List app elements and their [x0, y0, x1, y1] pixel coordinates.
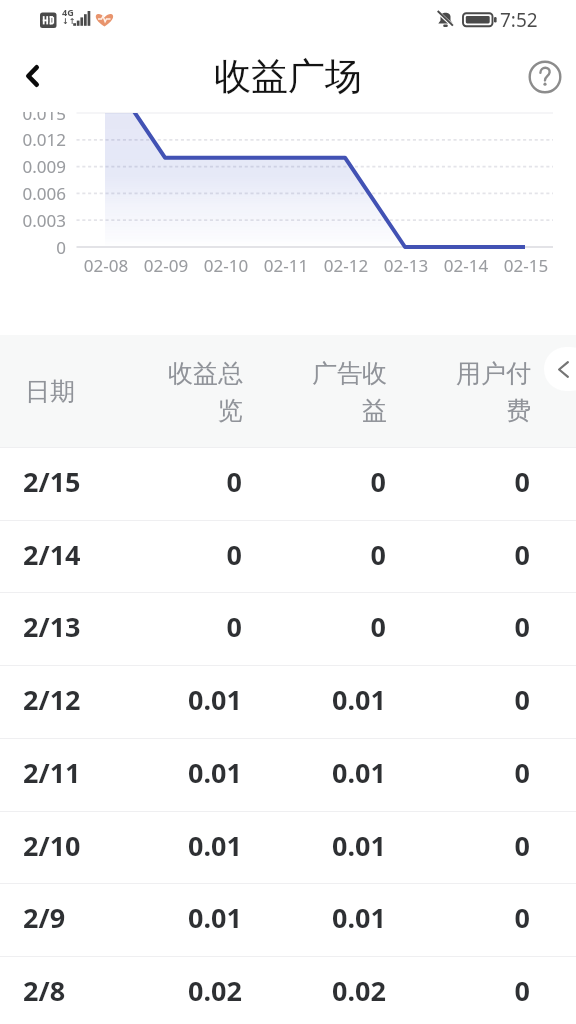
button[interactable]: 2/13: [0, 593, 576, 665]
button[interactable]: 2/9: [0, 884, 576, 956]
staticText: 0.01: [122, 827, 242, 864]
staticText: 0.01: [266, 827, 386, 864]
staticText: 0.01: [122, 899, 242, 936]
staticText: 0.01: [266, 754, 386, 791]
staticText: 02-13: [366, 254, 446, 277]
button[interactable]: Scroll columns: [544, 347, 576, 391]
staticText: 0.01: [266, 899, 386, 936]
button[interactable]: Help: [521, 53, 569, 101]
staticText: 02-09: [126, 254, 206, 277]
staticText: 0: [410, 972, 530, 1009]
staticText: 0: [122, 463, 242, 500]
staticText: 02-12: [306, 254, 386, 277]
staticText: 4G: [62, 6, 74, 18]
button[interactable]: 2/8: [0, 957, 576, 1024]
staticText: 0.01: [122, 681, 242, 718]
staticText: 0: [122, 536, 242, 573]
staticText: 2/12: [23, 681, 81, 718]
staticText: 0: [410, 536, 530, 573]
staticText: 0: [266, 463, 386, 500]
staticText: 用户付费: [453, 358, 531, 426]
staticText: 0.02: [122, 972, 242, 1009]
staticText: 收益广场: [214, 53, 362, 100]
button[interactable]: 2/11: [0, 739, 576, 811]
staticText: 0.006: [0, 182, 66, 205]
staticText: 0.015: [0, 104, 66, 125]
staticText: 0.01: [266, 681, 386, 718]
staticText: 2/8: [23, 972, 66, 1009]
staticText: 0: [410, 608, 530, 645]
staticText: 0: [122, 608, 242, 645]
staticText: 0.009: [0, 155, 66, 178]
staticText: 收益总览: [165, 358, 243, 426]
staticText: 广告收益: [309, 358, 387, 426]
staticText: 0: [266, 536, 386, 573]
button[interactable]: 2/15: [0, 448, 576, 520]
staticText: 2/10: [23, 827, 81, 864]
staticText: 0: [410, 463, 530, 500]
staticText: 02-10: [186, 254, 266, 277]
staticText: 日期: [25, 376, 75, 407]
staticText: 0.01: [122, 754, 242, 791]
staticText: 02-15: [486, 254, 566, 277]
staticText: 0: [410, 899, 530, 936]
staticText: 0: [266, 608, 386, 645]
staticText: 0: [410, 681, 530, 718]
staticText: 0: [0, 236, 66, 259]
staticText: 0.012: [0, 128, 66, 151]
staticText: 02-14: [426, 254, 506, 277]
staticText: ↓↑: [62, 17, 76, 26]
staticText: 02-08: [66, 254, 146, 277]
staticText: 0: [410, 827, 530, 864]
staticText: 2/9: [23, 899, 66, 936]
staticText: 02-11: [246, 254, 326, 277]
staticText: 2/14: [23, 536, 81, 573]
button[interactable]: 2/12: [0, 666, 576, 738]
staticText: 7:52: [500, 7, 538, 33]
staticText: 0: [410, 754, 530, 791]
button[interactable]: 2/14: [0, 521, 576, 593]
button[interactable]: Back: [8, 52, 56, 100]
button[interactable]: 2/10: [0, 812, 576, 884]
staticText: 2/11: [23, 754, 81, 791]
staticText: 0.02: [266, 972, 386, 1009]
staticText: 0.003: [0, 209, 66, 232]
staticText: 2/13: [23, 608, 81, 645]
staticText: 2/15: [23, 463, 81, 500]
